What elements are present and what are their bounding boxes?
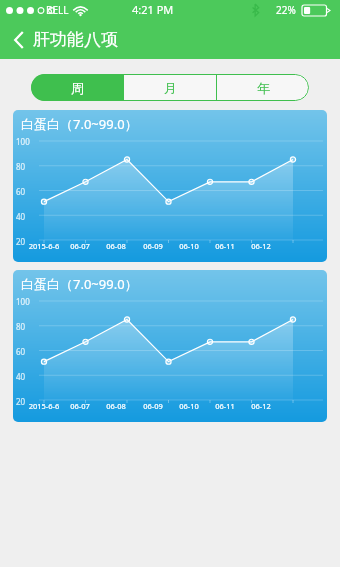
staticText: 06-10 <box>170 241 208 251</box>
button[interactable]: 年 <box>217 74 309 101</box>
button[interactable]: 白蛋白（7.0~99.0） <box>13 270 327 422</box>
staticText: 80 <box>16 161 36 172</box>
staticText: 06-08 <box>97 401 135 411</box>
staticText: 20 <box>16 396 36 407</box>
button[interactable]: Back <box>5 26 33 54</box>
staticText: BELL <box>46 3 69 17</box>
staticText: 06-12 <box>242 401 280 411</box>
staticText: 60 <box>16 186 36 197</box>
button[interactable]: 月 <box>124 74 216 101</box>
staticText: 60 <box>16 346 36 357</box>
staticText: 06-07 <box>61 241 99 251</box>
staticText: 4:21 PM <box>132 2 174 17</box>
staticText: 40 <box>16 371 36 382</box>
staticText: 2015-6-6 <box>25 401 63 411</box>
staticText: 100 <box>16 296 36 307</box>
staticText: 2015-6-6 <box>25 241 63 251</box>
staticText: 06-09 <box>134 401 172 411</box>
staticText: 22% <box>276 3 296 17</box>
staticText: 40 <box>16 211 36 222</box>
staticText: 06-11 <box>206 241 244 251</box>
staticText: 06-11 <box>206 401 244 411</box>
button[interactable]: 周 <box>31 74 123 101</box>
button[interactable]: 白蛋白（7.0~99.0） <box>13 110 327 262</box>
staticText: 白蛋白（7.0~99.0） <box>21 275 138 293</box>
staticText: 80 <box>16 321 36 332</box>
staticText: 06-07 <box>61 401 99 411</box>
staticText: 年 <box>257 80 270 96</box>
staticText: 肝功能八项 <box>33 29 118 50</box>
staticText: 白蛋白（7.0~99.0） <box>21 115 138 133</box>
staticText: 20 <box>16 236 36 247</box>
staticText: 06-12 <box>242 241 280 251</box>
staticText: 06-09 <box>134 241 172 251</box>
staticText: 06-10 <box>170 401 208 411</box>
staticText: 06-08 <box>97 241 135 251</box>
staticText: 100 <box>16 136 36 147</box>
staticText: 周 <box>71 80 84 96</box>
staticText: 月 <box>164 80 177 96</box>
